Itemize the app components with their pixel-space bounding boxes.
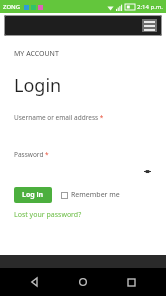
button[interactable]: Remember me bbox=[61, 190, 120, 200]
button[interactable]: Lost your password? bbox=[14, 210, 82, 220]
staticText: Remember me bbox=[71, 190, 120, 200]
button[interactable]: Show password bbox=[14, 162, 152, 179]
button[interactable]: Show password bbox=[142, 166, 152, 176]
button[interactable]: Home bbox=[70, 269, 96, 295]
staticText: 2:14 p.m. bbox=[137, 3, 163, 11]
staticText: ZONG bbox=[3, 3, 21, 11]
button[interactable]: Log in bbox=[14, 187, 52, 203]
staticText: Password * bbox=[14, 150, 49, 159]
staticText: Login bbox=[14, 73, 62, 98]
button[interactable]: Open navigation menu bbox=[142, 19, 157, 32]
button[interactable]: Recent apps bbox=[118, 269, 144, 295]
staticText: Lost your password? bbox=[14, 210, 82, 220]
staticText: Username or email address * bbox=[14, 113, 104, 122]
staticText: Log in bbox=[22, 190, 44, 200]
staticText: MY ACCOUNT bbox=[14, 49, 59, 59]
button[interactable]: Back bbox=[22, 269, 48, 295]
